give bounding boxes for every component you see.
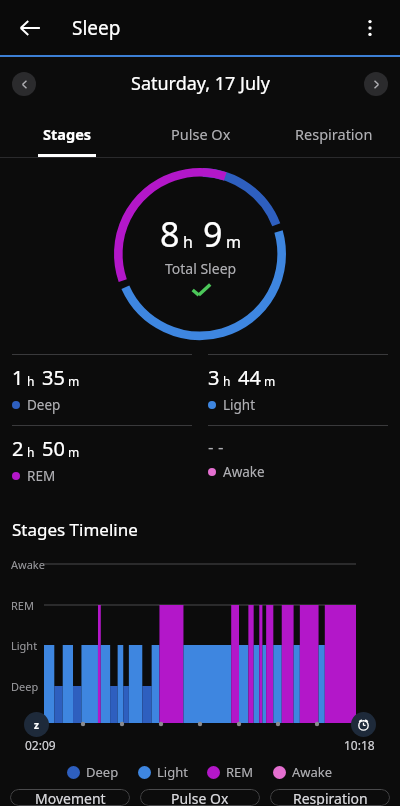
button[interactable]: Respiration [267,110,400,157]
button[interactable]: Pulse Ox [140,789,260,806]
button[interactable]: Wake time alarm [351,712,376,737]
staticText: m [264,373,276,389]
button[interactable]: Stages [0,110,134,157]
button[interactable]: Deep [67,763,119,781]
staticText: 35 [42,364,65,391]
button[interactable]: 3 [208,354,388,425]
button[interactable]: Back [8,6,52,50]
staticText: Awake [292,763,333,781]
staticText: 9 [203,211,223,257]
button[interactable]: Sleep start [24,712,49,737]
staticText: 8 [160,211,180,257]
staticText: Deep [27,396,61,414]
staticText: h [183,231,193,253]
staticText: 2 [12,435,24,462]
staticText: REM [11,598,34,613]
staticText: Stages [43,124,92,144]
staticText: 02:09 [25,737,56,753]
staticText: m [68,373,80,389]
staticText: Sleep [72,15,121,41]
staticText: Light [11,638,38,653]
staticText: z [34,718,39,732]
staticText: Pulse Ox [171,789,229,806]
button[interactable]: - - [208,425,388,492]
button[interactable]: 1 [12,354,192,425]
button[interactable]: 2 [12,425,192,496]
staticText: Light [157,763,188,781]
staticText: m [226,231,241,253]
button[interactable]: Previous day [12,72,36,96]
staticText: h [27,444,35,460]
staticText: REM [226,763,254,781]
staticText: 3 [208,364,220,391]
staticText: 10:18 [344,737,375,753]
button[interactable]: Next day [364,72,388,96]
button[interactable]: Respiration [270,789,390,806]
staticText: - - [208,435,224,458]
staticText: 50 [42,435,65,462]
button[interactable]: REM [207,763,254,781]
staticText: Movement [35,789,106,806]
staticText: Light [223,396,256,414]
staticText: REM [27,467,56,485]
staticText: Respiration [295,124,373,144]
staticText: m [68,444,80,460]
staticText: h [223,373,231,389]
button[interactable]: Movement [10,789,130,806]
staticText: Deep [11,679,39,694]
staticText: Deep [86,763,119,781]
button[interactable]: Pulse Ox [134,110,267,157]
button[interactable]: Light [138,763,188,781]
staticText: Stages Timeline [12,518,138,541]
staticText: 1 [12,364,24,391]
staticText: Pulse Ox [171,124,231,144]
staticText: Saturday, 17 July [131,71,270,96]
staticText: 44 [238,364,261,391]
staticText: h [27,373,35,389]
staticText: Respiration [293,789,368,806]
staticText: Awake [223,463,265,481]
staticText: Awake [11,557,45,572]
button[interactable]: More options [348,6,392,50]
staticText: Total Sleep [165,259,237,278]
button[interactable]: Awake [273,763,333,781]
